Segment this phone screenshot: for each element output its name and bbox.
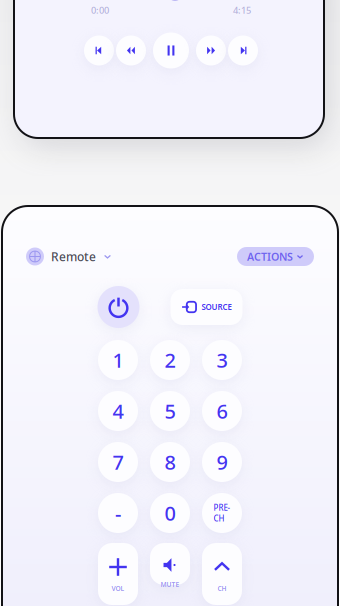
button[interactable]: Power: [97, 286, 139, 328]
staticText: 9: [216, 449, 227, 475]
button[interactable]: 1: [98, 340, 138, 380]
button[interactable]: Previous track: [83, 35, 114, 66]
staticText: CH: [217, 584, 226, 593]
button[interactable]: -: [98, 493, 138, 533]
button[interactable]: 2: [150, 340, 190, 380]
button[interactable]: Fast forward: [195, 35, 226, 66]
staticText: VOL: [111, 584, 124, 593]
button[interactable]: Channel up: [202, 543, 242, 605]
staticText: 2: [164, 347, 175, 373]
staticText: 3: [216, 347, 227, 373]
staticText: 6: [216, 398, 227, 424]
staticText: MUTE: [160, 580, 179, 589]
staticText: 0: [164, 500, 175, 526]
button[interactable]: 9: [202, 442, 242, 482]
button[interactable]: 8: [150, 442, 190, 482]
button[interactable]: 7: [98, 442, 138, 482]
button[interactable]: Mute: [150, 543, 190, 585]
button[interactable]: SOURCE: [170, 289, 242, 325]
staticText: 5: [164, 398, 175, 424]
staticText: PRE- CH: [213, 502, 230, 524]
button[interactable]: 5: [150, 391, 190, 431]
staticText: 4: [112, 398, 123, 424]
button[interactable]: 6: [202, 391, 242, 431]
staticText: 0:00: [91, 4, 109, 16]
button[interactable]: 3: [202, 340, 242, 380]
button[interactable]: Rewind: [115, 35, 146, 66]
staticText: 1: [112, 347, 123, 373]
button[interactable]: Remote: [26, 247, 112, 265]
button[interactable]: 4: [98, 391, 138, 431]
button[interactable]: PRE- CH: [202, 493, 242, 533]
button[interactable]: Pause: [152, 32, 189, 69]
button[interactable]: Next track: [227, 35, 258, 66]
staticText: 7: [112, 449, 123, 475]
button[interactable]: 0: [150, 493, 190, 533]
staticText: -: [115, 500, 121, 526]
staticText: 4:15: [233, 4, 251, 16]
staticText: SOURCE: [201, 302, 231, 312]
button[interactable]: Volume up: [98, 543, 138, 605]
staticText: 8: [164, 449, 175, 475]
button[interactable]: ACTIONS: [237, 247, 314, 266]
staticText: Remote: [51, 248, 96, 264]
staticText: ACTIONS: [247, 249, 293, 264]
